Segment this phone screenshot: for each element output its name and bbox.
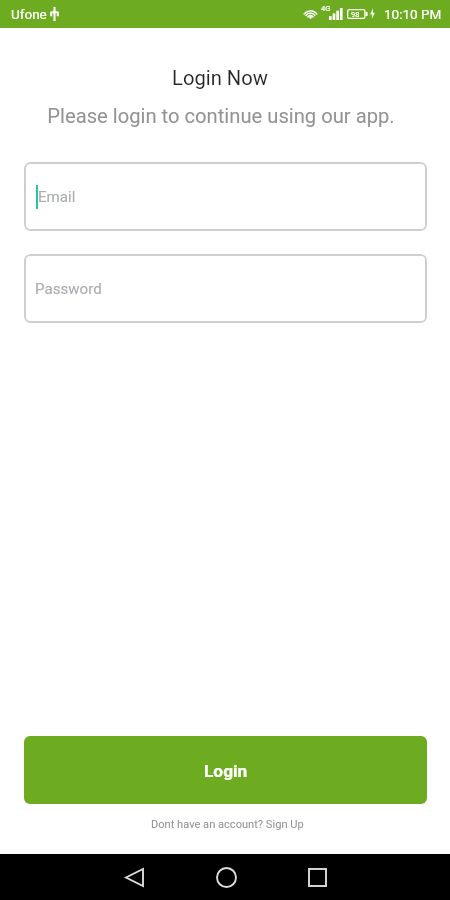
staticText: Email	[38, 188, 76, 206]
button[interactable]: Login	[24, 736, 427, 804]
button[interactable]: Email	[24, 162, 427, 231]
staticText: Login Now	[0, 66, 445, 90]
button[interactable]: Dont have an account? Sign Up	[151, 818, 304, 831]
button[interactable]: Home	[206, 857, 246, 897]
button[interactable]: Password	[24, 254, 427, 323]
staticText: Please login to continue using our app.	[0, 104, 446, 128]
staticText: 4G	[321, 4, 331, 13]
staticText: Login	[204, 761, 248, 781]
staticText: 98	[351, 10, 360, 19]
button[interactable]: Back	[114, 857, 154, 897]
staticText: Password	[35, 280, 102, 298]
button[interactable]: Recent apps	[297, 857, 337, 897]
staticText: Ufone	[11, 6, 47, 22]
staticText: 10:10 PM	[384, 6, 442, 22]
